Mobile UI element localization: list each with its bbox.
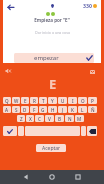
staticText: Empieza por "E" bbox=[34, 17, 70, 23]
staticText: N bbox=[68, 116, 72, 122]
staticText: Q bbox=[5, 98, 9, 104]
staticText: P bbox=[91, 98, 94, 104]
button[interactable]: Numbers bbox=[18, 126, 24, 136]
staticText: J bbox=[62, 107, 64, 113]
staticText: empezar bbox=[34, 54, 59, 62]
staticText: C bbox=[38, 116, 41, 122]
button[interactable]: V bbox=[45, 115, 54, 122]
button[interactable]: A bbox=[3, 106, 11, 113]
button[interactable]: I bbox=[68, 97, 77, 104]
button[interactable]: N bbox=[65, 115, 74, 122]
staticText: T bbox=[42, 98, 45, 104]
staticText: G bbox=[41, 107, 45, 113]
button[interactable]: B bbox=[55, 115, 64, 122]
staticText: I bbox=[72, 98, 74, 104]
staticText: F bbox=[33, 107, 36, 113]
button[interactable]: Ñ bbox=[88, 106, 97, 113]
button[interactable]: R bbox=[30, 97, 38, 104]
staticText: Aceptar bbox=[42, 145, 61, 152]
staticText: U bbox=[61, 98, 65, 104]
button[interactable]: U bbox=[58, 97, 67, 104]
button[interactable]: D bbox=[21, 106, 29, 113]
staticText: Ñ bbox=[91, 107, 95, 113]
button[interactable]: H bbox=[48, 106, 57, 113]
staticText: V bbox=[48, 116, 51, 122]
button[interactable]: Back bbox=[19, 170, 33, 184]
button[interactable]: L bbox=[78, 106, 87, 113]
button[interactable]: Q bbox=[3, 97, 11, 104]
staticText: B bbox=[58, 116, 62, 122]
staticText: Z bbox=[20, 116, 23, 122]
button[interactable]: Accept bbox=[3, 126, 17, 136]
staticText: E bbox=[24, 98, 27, 104]
button[interactable]: Home bbox=[45, 170, 59, 184]
button[interactable]: M bbox=[75, 115, 84, 122]
button[interactable]: Backspace bbox=[87, 126, 97, 136]
button[interactable]: X bbox=[26, 115, 34, 122]
button[interactable]: 330 bbox=[83, 2, 97, 9]
button[interactable]: P bbox=[88, 97, 97, 104]
button[interactable]: Y bbox=[48, 97, 57, 104]
button[interactable]: F bbox=[30, 106, 38, 113]
button[interactable]: G bbox=[39, 106, 47, 113]
staticText: D bbox=[23, 107, 27, 113]
staticText: 330 bbox=[83, 2, 92, 9]
button[interactable]: Z bbox=[17, 115, 25, 122]
staticText: Y bbox=[51, 98, 54, 104]
staticText: K bbox=[71, 107, 74, 113]
button[interactable]: K bbox=[68, 106, 77, 113]
button[interactable]: Messages bbox=[90, 70, 95, 74]
staticText: E bbox=[49, 75, 57, 93]
button[interactable]: E bbox=[21, 97, 29, 104]
button[interactable]: Period bbox=[81, 126, 86, 136]
staticText: O bbox=[81, 98, 85, 104]
button[interactable]: Space bbox=[25, 126, 80, 136]
staticText: R bbox=[33, 98, 36, 104]
staticText: L bbox=[81, 107, 84, 113]
staticText: Dar inicio a una cosa bbox=[35, 30, 70, 35]
button[interactable]: Aceptar bbox=[36, 144, 66, 152]
staticText: W bbox=[14, 98, 19, 104]
staticText: M bbox=[77, 116, 82, 122]
staticText: X bbox=[29, 116, 32, 122]
button[interactable]: C bbox=[35, 115, 44, 122]
staticText: S bbox=[15, 107, 18, 113]
button[interactable]: Mute sound bbox=[5, 68, 11, 74]
staticText: A bbox=[5, 107, 9, 113]
button[interactable]: T bbox=[39, 97, 47, 104]
button[interactable]: J bbox=[58, 106, 67, 113]
staticText: H bbox=[51, 107, 55, 113]
button[interactable]: Back bbox=[5, 2, 16, 12]
button[interactable]: O bbox=[78, 97, 87, 104]
button[interactable]: Recent apps bbox=[71, 170, 85, 184]
button[interactable]: W bbox=[12, 97, 20, 104]
button[interactable]: S bbox=[12, 106, 20, 113]
button[interactable]: empezar bbox=[14, 53, 94, 63]
